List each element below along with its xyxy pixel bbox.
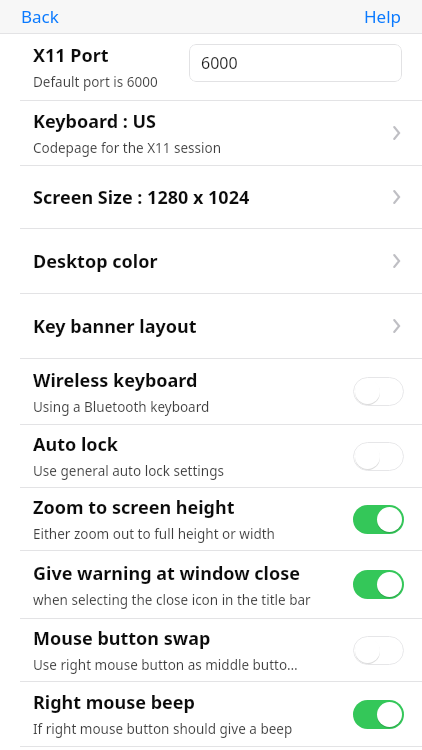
staticText: Default port is 6000	[33, 73, 158, 91]
button[interactable]: Desktop color	[0, 229, 422, 293]
staticText: Keyboard : US	[33, 109, 157, 134]
button[interactable]: Right mouse beep	[0, 682, 422, 746]
staticText: Codepage for the X11 session	[33, 139, 222, 157]
staticText: Give warning at window close	[33, 561, 300, 586]
staticText: Use right mouse button as middle butto…	[33, 656, 298, 674]
staticText: X11 Port	[33, 43, 109, 68]
staticText: Wireless keyboard	[33, 368, 198, 393]
button[interactable]: Give warning at window close	[0, 551, 422, 618]
button[interactable]: Toggle off	[353, 636, 404, 665]
button[interactable]: Toggle off	[353, 377, 404, 406]
staticText: Using a Bluetooth keyboard	[33, 398, 210, 416]
staticText: Right mouse beep	[33, 690, 195, 715]
staticText: when selecting the close icon in the tit…	[33, 591, 311, 609]
button[interactable]: Toggle off	[353, 442, 404, 471]
button[interactable]: Toggle on	[353, 505, 404, 534]
staticText: Back	[21, 5, 59, 28]
staticText: 6000	[201, 52, 238, 74]
staticText: If right mouse button should give a beep	[33, 720, 293, 738]
staticText: Either zoom out to full height or width	[33, 525, 275, 543]
button[interactable]: Wireless keyboard	[0, 359, 422, 424]
staticText: Auto lock	[33, 432, 118, 457]
staticText: Use general auto lock settings	[33, 462, 224, 480]
staticText: Screen Size : 1280 x 1024	[33, 185, 250, 210]
button[interactable]: Zoom to screen height	[0, 488, 422, 550]
staticText: Zoom to screen height	[33, 495, 235, 520]
button[interactable]: Keyboard : US	[0, 101, 422, 165]
button[interactable]: Help	[350, 1, 422, 32]
staticText: Desktop color	[33, 249, 158, 274]
button[interactable]: Back	[0, 1, 73, 32]
button[interactable]: Auto lock	[0, 425, 422, 487]
button[interactable]: 6000	[189, 44, 402, 82]
staticText: Mouse button swap	[33, 626, 211, 651]
button[interactable]: Mouse button swap	[0, 619, 422, 681]
button[interactable]: Key banner layout	[0, 294, 422, 358]
button[interactable]: Screen Size : 1280 x 1024	[0, 166, 422, 228]
staticText: Key banner layout	[33, 314, 197, 339]
button[interactable]: Toggle on	[353, 570, 404, 599]
button[interactable]: Toggle on	[353, 700, 404, 729]
staticText: Help	[364, 5, 402, 28]
